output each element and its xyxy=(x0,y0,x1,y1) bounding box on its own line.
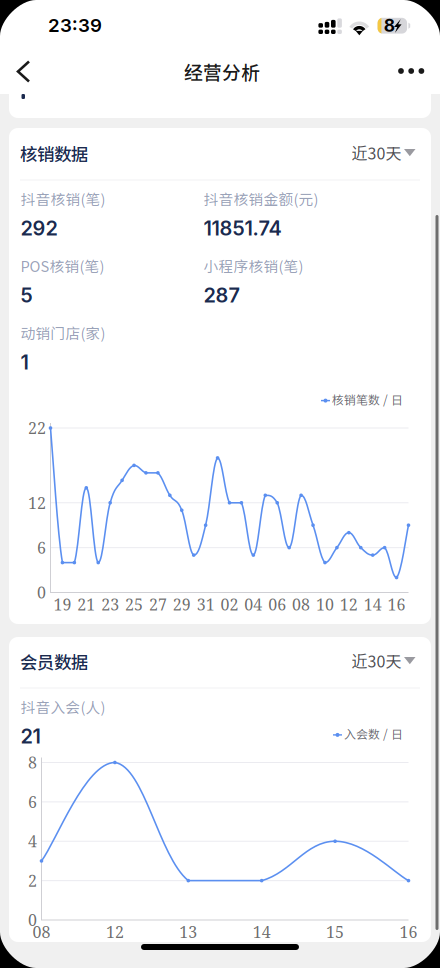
staticText: 14 xyxy=(253,921,271,943)
staticText: 6 xyxy=(28,791,37,813)
staticText: 抖音入会(人) xyxy=(20,696,105,717)
button[interactable]: More options xyxy=(396,49,440,968)
staticText: 19 xyxy=(53,593,71,615)
staticText: 近30天 xyxy=(351,649,401,672)
staticText: 02 xyxy=(220,593,238,615)
staticText: 11851.74 xyxy=(203,216,281,240)
staticText: 14 xyxy=(364,593,382,615)
staticText: 25 xyxy=(125,593,143,615)
staticText: 31 xyxy=(197,593,215,615)
staticText: 08 xyxy=(32,921,50,943)
staticText: 292 xyxy=(20,216,57,240)
staticText: 会员数据 xyxy=(20,649,88,674)
staticText: 8 xyxy=(28,751,37,773)
staticText: 16 xyxy=(399,921,417,943)
staticText: 16 xyxy=(388,593,406,615)
staticText: 经营分析 xyxy=(184,58,260,85)
staticText: 23:39 xyxy=(48,14,102,37)
staticText: 入会数 / 日 xyxy=(344,725,403,742)
staticText: 5 xyxy=(20,283,32,307)
staticText: 12 xyxy=(340,593,358,615)
staticText: 6 xyxy=(37,537,46,558)
staticText: 抖音核销金额(元) xyxy=(203,188,318,209)
staticText: 04 xyxy=(244,593,262,615)
button[interactable]: 近30天 xyxy=(351,646,440,968)
staticText: 21 xyxy=(20,724,40,748)
staticText: 0 xyxy=(28,909,37,931)
staticText: 21 xyxy=(77,593,95,615)
staticText: POS核销(笔) xyxy=(20,255,104,276)
staticText: 近30天 xyxy=(351,141,401,164)
staticText: 8 xyxy=(384,15,395,36)
staticText: 22 xyxy=(28,417,46,439)
staticText: 29 xyxy=(173,593,191,615)
staticText: 06 xyxy=(268,593,286,615)
staticText: 1 xyxy=(20,350,28,374)
staticText: 287 xyxy=(203,283,239,307)
staticText: 27 xyxy=(149,593,167,615)
staticText: 0 xyxy=(37,581,46,603)
staticText: 抖音核销(笔) xyxy=(20,188,105,209)
staticText: 小程序核销(笔) xyxy=(203,255,303,276)
staticText: 15 xyxy=(326,921,344,943)
button[interactable]: Back xyxy=(18,49,440,968)
staticText: 10 xyxy=(316,593,334,615)
staticText: 23 xyxy=(101,593,119,615)
staticText: 4 xyxy=(28,830,37,852)
staticText: 12 xyxy=(28,492,46,514)
staticText: 动销门店(家) xyxy=(20,322,105,343)
staticText: 核销数据 xyxy=(20,141,88,166)
staticText: 12 xyxy=(106,921,124,943)
staticText: 2 xyxy=(28,870,37,891)
staticText: 13 xyxy=(179,921,197,943)
staticText: 核销笔数 / 日 xyxy=(332,391,403,408)
button[interactable]: 近30天 xyxy=(351,138,440,968)
staticText: 08 xyxy=(292,593,310,615)
